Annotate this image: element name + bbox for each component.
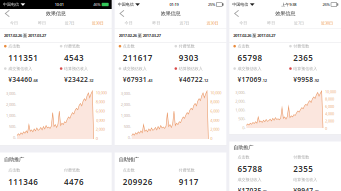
staticText: 付费笔数 — [64, 168, 80, 173]
staticText: - — [244, 90, 245, 95]
staticText: 46% — [93, 2, 100, 7]
staticText: 500 — [9, 124, 15, 129]
staticText: .68 — [32, 78, 37, 83]
staticText: 自助推广 — [119, 156, 139, 163]
staticText: 65788 — [237, 164, 262, 174]
staticText: 3,000 — [6, 91, 15, 96]
button[interactable]: 近30日 — [198, 18, 226, 28]
staticText: 10,000 — [325, 89, 336, 94]
staticText: 近30日 — [92, 20, 104, 26]
staticText: .32 — [88, 78, 93, 83]
button[interactable]: 近30日 — [84, 18, 112, 28]
staticText: 近7日 — [294, 20, 304, 26]
staticText: 500 — [124, 124, 130, 129]
staticText: 付费笔数 — [293, 155, 309, 160]
staticText: 点击数 — [237, 155, 249, 160]
staticText: 今日 — [125, 20, 133, 25]
staticText: 近30日 — [206, 20, 218, 26]
staticText: - — [130, 91, 131, 96]
staticText: 6,000 — [210, 108, 219, 114]
staticText: .12 — [262, 78, 267, 83]
staticText: 结算预估收入 — [293, 66, 317, 71]
staticText: 4,000 — [96, 117, 105, 123]
staticText: 8,000 — [96, 99, 105, 104]
staticText: 近7日 — [65, 20, 75, 26]
staticText: .36 — [314, 189, 319, 191]
button[interactable]: Back — [0, 9, 13, 18]
staticText: 0 — [13, 135, 15, 140]
button[interactable]: 今日 — [115, 18, 143, 28]
staticText: - — [15, 135, 16, 140]
staticText: 209926 — [123, 177, 153, 187]
staticText: 4,000 — [210, 117, 219, 123]
button[interactable]: 今日 — [229, 18, 257, 28]
staticText: 2,000 — [235, 98, 244, 104]
button[interactable]: 近7日 — [170, 18, 198, 28]
staticText: 结算预估收入 — [293, 177, 317, 182]
button[interactable]: 今日 — [0, 18, 28, 28]
staticText: 10,000 — [210, 90, 221, 95]
staticText: 500 — [238, 116, 244, 121]
staticText: 效果信息 — [160, 10, 180, 17]
staticText: ¥9958 — [293, 75, 313, 84]
staticText: 点击数 — [8, 168, 20, 173]
staticText: - — [15, 124, 16, 129]
staticText: 昨日 — [267, 20, 275, 25]
staticText: - — [15, 113, 16, 118]
button[interactable]: 昨日 — [28, 18, 56, 28]
staticText: 上午9:38 — [281, 2, 296, 7]
staticText: 3,000 — [121, 91, 130, 96]
staticText: 2355 — [293, 164, 313, 174]
staticText: 9303 — [179, 53, 199, 63]
button[interactable]: Back — [115, 9, 128, 18]
staticText: ¥17035 — [237, 186, 261, 191]
staticText: 付费笔数 — [293, 44, 309, 49]
staticText: ¥17069 — [237, 75, 261, 84]
staticText: 9117 — [179, 177, 199, 187]
staticText: 211617 — [123, 53, 153, 63]
staticText: 成交预估收入 — [237, 66, 261, 71]
staticText: 近30日 — [321, 20, 333, 26]
staticText: 0 — [96, 136, 98, 141]
staticText: 26% — [323, 2, 330, 7]
staticText: 点击数 — [8, 44, 20, 49]
staticText: .92 — [314, 78, 319, 83]
staticText: 6,000 — [96, 108, 105, 114]
staticText: 成交预估收入 — [237, 177, 261, 182]
button[interactable]: Back — [229, 9, 242, 18]
staticText: 6,000 — [325, 104, 334, 109]
staticText: 成交预估收入 — [8, 66, 32, 71]
staticText: ¥67931 — [123, 75, 147, 84]
staticText: 中国电信 — [3, 2, 19, 7]
staticText: .43 — [147, 78, 152, 83]
staticText: - — [130, 102, 131, 107]
staticText: 4,000 — [325, 111, 334, 116]
staticText: 0 — [210, 136, 212, 141]
staticText: 自助推广 — [233, 144, 253, 151]
staticText: 2,000 — [96, 127, 105, 132]
button[interactable]: 近30日 — [313, 18, 341, 28]
staticText: 2017-02-26 至 2017-03-27 — [4, 33, 46, 38]
staticText: 结算预估收入 — [64, 66, 88, 71]
staticText: 1,000 — [235, 107, 244, 113]
staticText: 1,000 — [121, 113, 130, 118]
staticText: ¥9947 — [293, 186, 313, 191]
staticText: 点击数 — [237, 44, 249, 49]
staticText: 今日 — [10, 20, 18, 25]
staticText: 结算预估收入 — [179, 66, 203, 71]
staticText: ¥23422 — [64, 75, 88, 84]
staticText: 3,000 — [235, 90, 244, 95]
staticText: 点击数 — [123, 168, 135, 173]
button[interactable]: 近7日 — [56, 18, 84, 28]
button[interactable]: 近7日 — [285, 18, 313, 28]
staticText: 近7日 — [179, 20, 189, 26]
button[interactable]: 昨日 — [257, 18, 285, 28]
staticText: 111351 — [8, 53, 38, 63]
button[interactable]: 昨日 — [143, 18, 170, 28]
staticText: - — [130, 113, 131, 118]
staticText: 付费笔数 — [179, 44, 195, 49]
staticText: 自助推广 — [4, 156, 24, 163]
staticText: 2,000 — [210, 127, 219, 132]
staticText: 01:19 — [169, 2, 178, 7]
staticText: 10,000 — [96, 90, 107, 95]
